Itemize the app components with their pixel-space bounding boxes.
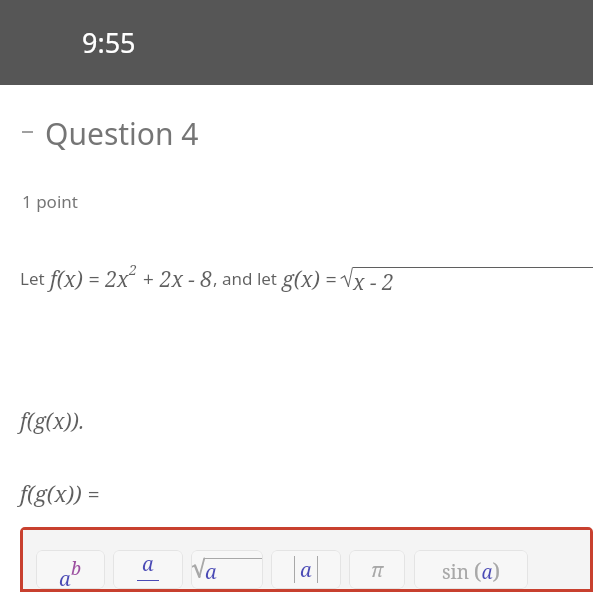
staticText: π [371, 557, 384, 583]
staticText: Let [20, 267, 50, 290]
staticText: 1 point [22, 190, 78, 213]
staticText: g(x) = [282, 265, 337, 294]
staticText: sin (a) [442, 555, 501, 585]
staticText: f(g(x)). [20, 407, 85, 436]
staticText: b [71, 556, 82, 581]
staticText: x − 2 [353, 268, 394, 297]
staticText: f(x) = 2x [50, 265, 129, 294]
button[interactable]: square root [191, 550, 263, 589]
button[interactable]: a^b [36, 550, 105, 589]
staticText: 9:55 [82, 24, 136, 61]
staticText: a [205, 558, 217, 585]
staticText: 2 [129, 260, 137, 279]
staticText: a [300, 556, 312, 583]
button[interactable]: absolute value [271, 550, 341, 589]
staticText: b [142, 584, 154, 589]
button[interactable]: pi [349, 550, 405, 589]
staticText: + 2x − 8 [137, 265, 213, 294]
button[interactable]: fraction [113, 550, 183, 589]
staticText: a [142, 550, 154, 577]
staticText: a [59, 565, 71, 589]
staticText: f(g(x)) = [20, 478, 100, 508]
button[interactable]: sine [414, 550, 528, 589]
staticText: Question 4 [45, 113, 199, 154]
staticText: , and let [213, 267, 282, 290]
